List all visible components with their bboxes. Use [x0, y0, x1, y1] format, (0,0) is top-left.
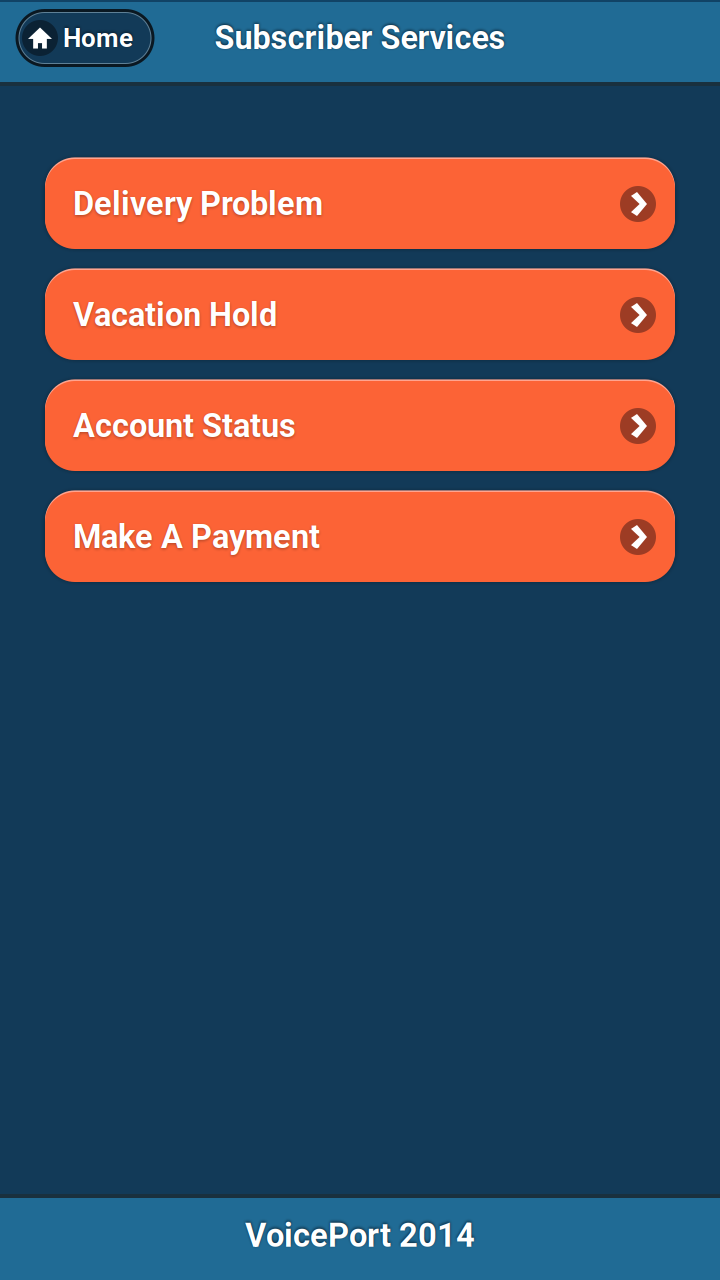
button[interactable]: Vacation Hold: [45, 270, 675, 360]
staticText: Subscriber Services: [214, 19, 505, 57]
staticText: Account Status: [73, 407, 296, 445]
button[interactable]: Home: [17, 10, 153, 71]
staticText: Home: [63, 23, 133, 53]
staticText: VoicePort 2014: [245, 1216, 475, 1255]
staticText: Delivery Problem: [73, 185, 323, 223]
staticText: Vacation Hold: [73, 296, 277, 334]
button[interactable]: Make A Payment: [45, 492, 675, 582]
staticText: Make A Payment: [73, 518, 320, 556]
button[interactable]: Delivery Problem: [45, 159, 675, 249]
button[interactable]: Account Status: [45, 381, 675, 471]
